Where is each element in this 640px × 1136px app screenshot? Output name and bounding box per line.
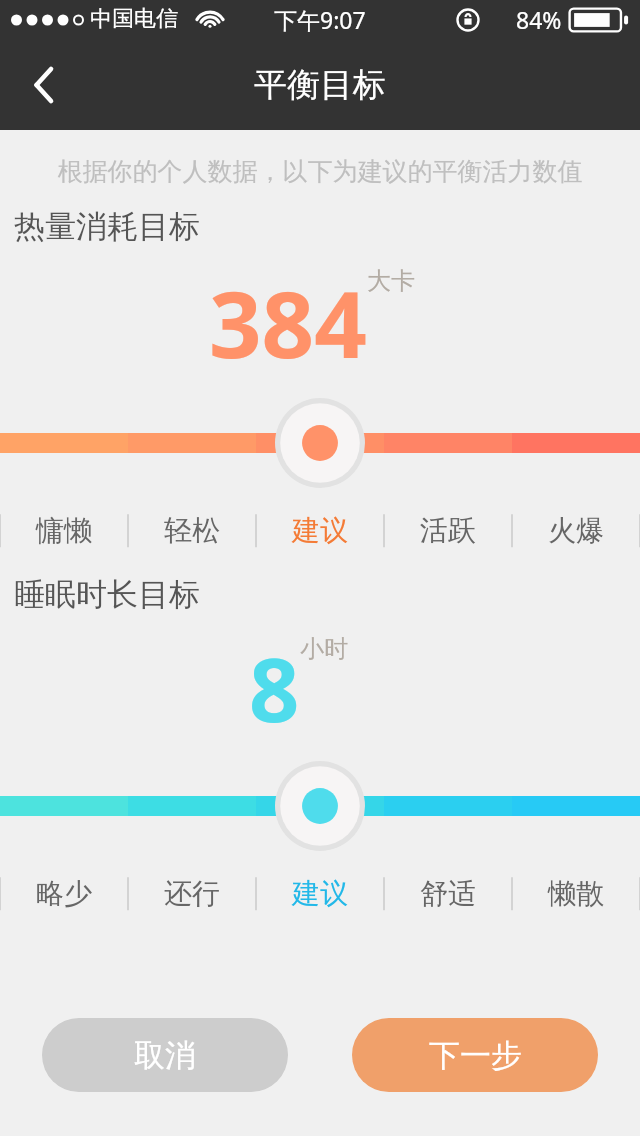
staticText: 下午9:07 (274, 4, 366, 35)
button[interactable]: 下一步 (352, 1018, 598, 1092)
button[interactable]: 还行 (128, 860, 256, 926)
staticText: 慵懒 (36, 513, 92, 548)
staticText: 火爆 (548, 513, 604, 548)
staticText: 舒适 (420, 876, 476, 911)
button[interactable]: 懒散 (512, 860, 640, 926)
staticText: 睡眠时长目标 (14, 575, 200, 614)
staticText: 取消 (134, 1036, 196, 1075)
staticText: 384 (209, 260, 367, 385)
staticText: 下一步 (429, 1036, 522, 1075)
button[interactable]: 轻松 (128, 497, 256, 563)
staticText: 大卡 (367, 266, 415, 296)
button[interactable] (0, 752, 640, 860)
staticText: 84% (516, 4, 562, 35)
staticText: 略少 (36, 876, 92, 911)
button[interactable]: 舒适 (384, 860, 512, 926)
staticText: 8 (249, 628, 300, 748)
staticText: 活跃 (420, 513, 476, 548)
button[interactable] (0, 389, 640, 497)
staticText: 还行 (164, 876, 220, 911)
button[interactable]: 建议 (256, 860, 384, 926)
staticText: 懒散 (548, 876, 604, 911)
staticText: 轻松 (164, 513, 220, 548)
staticText: 热量消耗目标 (14, 207, 200, 246)
button[interactable]: 取消 (42, 1018, 288, 1092)
staticText: 中国电信 (90, 5, 178, 33)
staticText: 根据你的个人数据，以下为建议的平衡活力数值 (0, 156, 640, 187)
staticText: 建议 (292, 513, 348, 548)
button[interactable]: 返回 (0, 40, 88, 130)
button[interactable]: 略少 (0, 860, 128, 926)
button[interactable]: 火爆 (512, 497, 640, 563)
button[interactable]: 活跃 (384, 497, 512, 563)
staticText: 小时 (300, 634, 348, 664)
staticText: 建议 (292, 876, 348, 911)
button[interactable]: 建议 (256, 497, 384, 563)
staticText: 平衡目标 (254, 64, 386, 106)
button[interactable]: 慵懒 (0, 497, 128, 563)
